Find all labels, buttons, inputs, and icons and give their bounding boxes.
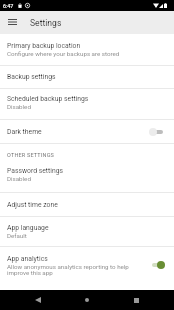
staticText: Disabled (7, 103, 31, 110)
staticText: Scheduled backup settings (7, 95, 89, 103)
staticText: Primary backup location (7, 42, 81, 50)
button[interactable]: App language (0, 217, 174, 246)
button[interactable]: Recent apps (116, 290, 156, 310)
staticText: Configure where your backups are stored (7, 50, 120, 57)
button[interactable]: App analytics (0, 247, 174, 290)
staticText: Disabled (7, 175, 31, 182)
button[interactable]: Scheduled backup settings (0, 89, 174, 119)
staticText: Backup settings (7, 73, 56, 81)
button[interactable]: Home (67, 290, 107, 310)
button[interactable]: Primary backup location (0, 34, 174, 65)
button[interactable]: Password settings (0, 167, 174, 192)
button[interactable]: Back (18, 290, 58, 310)
staticText: Allow anonymous analytics reporting to h… (7, 263, 129, 277)
staticText: OTHER SETTINGS (7, 152, 55, 158)
button[interactable]: Dark theme (0, 120, 174, 143)
button[interactable]: Backup settings (0, 66, 174, 88)
staticText: App language (7, 224, 49, 232)
staticText: 6:47 (3, 3, 14, 9)
staticText: Password settings (7, 167, 63, 175)
staticText: Adjust time zone (7, 201, 58, 209)
button[interactable]: Open navigation menu (0, 11, 24, 34)
staticText: Dark theme (7, 128, 42, 136)
button[interactable]: Adjust time zone (0, 193, 174, 216)
staticText: Settings (30, 18, 62, 28)
staticText: Default (7, 232, 27, 239)
staticText: App analytics (7, 255, 48, 263)
